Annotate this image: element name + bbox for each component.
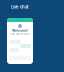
staticText: Live chat (11, 4, 29, 10)
staticText: How can we help? (10, 32, 30, 36)
staticText: Welcome! (12, 29, 28, 32)
